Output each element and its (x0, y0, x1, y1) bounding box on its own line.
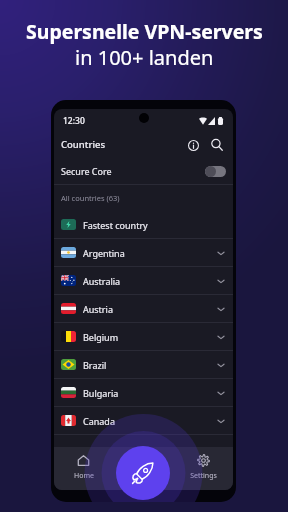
button[interactable]: Bulgaria (54, 379, 233, 406)
staticText: Secure Core (61, 165, 112, 177)
staticText: 12:30 (63, 115, 85, 127)
staticText: Canada (83, 415, 115, 427)
button[interactable]: Brazil (54, 351, 233, 378)
staticText: Home (74, 471, 94, 481)
staticText: Fastest country (83, 219, 148, 231)
staticText: Argentina (83, 247, 125, 259)
button[interactable]: Fastest country (54, 211, 233, 238)
button[interactable]: Argentina (54, 239, 233, 266)
staticText: Settings (190, 471, 217, 481)
button[interactable]: Information (183, 135, 203, 155)
button[interactable]: Austria (54, 295, 233, 322)
button[interactable]: Belgium (54, 323, 233, 350)
button[interactable]: Connect (116, 446, 170, 500)
staticText: Countries (61, 138, 106, 151)
staticText: Australia (83, 275, 121, 287)
staticText: Belgium (83, 331, 119, 343)
staticText: in 100+ landen (75, 44, 214, 71)
staticText: Supersnelle VPN-servers (26, 18, 263, 45)
button[interactable]: Secure Core (54, 158, 233, 184)
staticText: All countries (63) (61, 193, 120, 203)
button[interactable]: Australia (54, 267, 233, 294)
staticText: Bulgaria (83, 387, 119, 399)
staticText: Austria (83, 303, 113, 315)
button[interactable]: Settings (173, 454, 233, 481)
button[interactable]: Canada (54, 407, 233, 434)
staticText: Brazil (83, 359, 107, 371)
button[interactable]: Home (54, 454, 113, 481)
button[interactable]: Search (207, 135, 227, 155)
